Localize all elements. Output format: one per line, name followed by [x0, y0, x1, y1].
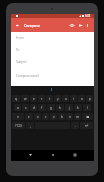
button[interactable]: t [46, 95, 53, 102]
staticText: g [50, 106, 52, 110]
button[interactable]: q [12, 95, 20, 102]
button[interactable]: y [54, 95, 61, 102]
button[interactable]: n [66, 113, 73, 120]
staticText: k [77, 106, 79, 110]
staticText: I [51, 88, 53, 92]
button[interactable]: k [74, 104, 82, 111]
staticText: c [45, 115, 47, 119]
button[interactable]: z [25, 113, 33, 120]
button[interactable]: w [21, 95, 29, 102]
button[interactable]: f [38, 104, 46, 111]
staticText: r [41, 97, 43, 101]
button[interactable] [12, 113, 24, 120]
button[interactable]: x [34, 113, 41, 120]
button[interactable]: Back [27, 152, 33, 158]
staticText: 6:03 [85, 14, 91, 18]
staticText: m [76, 115, 79, 119]
button[interactable]: , [26, 122, 34, 129]
staticText: i [73, 97, 74, 101]
button[interactable]: e [30, 95, 37, 102]
button[interactable]: u [62, 95, 69, 102]
button[interactable]: Compose email [11, 68, 94, 86]
button[interactable] [80, 122, 93, 129]
button[interactable]: g [47, 104, 55, 111]
button[interactable]: v [50, 113, 57, 120]
staticText: p [89, 97, 91, 101]
staticText: w [24, 97, 27, 101]
button[interactable]: o [78, 95, 85, 102]
button[interactable]: p [86, 95, 93, 102]
staticText: . [75, 124, 76, 128]
button[interactable]: Recent apps [72, 152, 78, 158]
staticText: o [81, 97, 83, 101]
staticText: j [69, 106, 70, 110]
button[interactable]: a [14, 104, 21, 111]
staticText: Compose [24, 23, 41, 28]
staticText: Compose email [16, 74, 39, 78]
button[interactable]: s [22, 104, 29, 111]
button[interactable]: m [74, 113, 81, 120]
staticText: t [49, 97, 51, 101]
button[interactable]: Home [50, 152, 56, 158]
staticText: x [37, 115, 39, 119]
staticText: e [33, 97, 35, 101]
button[interactable]: h [56, 104, 64, 111]
button[interactable]: d [30, 104, 37, 111]
staticText: ?123 [15, 124, 22, 128]
staticText: d [33, 106, 35, 110]
staticText: y [57, 97, 59, 101]
button[interactable]: . [71, 122, 79, 129]
button[interactable]: To [11, 44, 94, 56]
staticText: n [69, 115, 71, 119]
button[interactable]: Back [14, 22, 21, 29]
button[interactable]: j [65, 104, 73, 111]
staticText: To [16, 48, 20, 52]
button[interactable]: c [42, 113, 49, 120]
button[interactable]: ?123 [12, 122, 25, 129]
button[interactable]: I [38, 86, 66, 94]
staticText: u [65, 97, 67, 101]
staticText: From [16, 36, 24, 40]
button[interactable]: Attach file [68, 22, 75, 29]
button[interactable] [82, 113, 93, 120]
staticText: h [59, 106, 61, 110]
staticText: Subject [16, 60, 27, 64]
button[interactable]: Send [77, 22, 84, 29]
staticText: s [25, 106, 27, 110]
staticText: f [41, 106, 43, 110]
staticText: z [28, 115, 30, 119]
button[interactable]: Subject [11, 56, 94, 68]
staticText: a [17, 106, 19, 110]
button[interactable]: l [83, 104, 91, 111]
staticText: v [53, 115, 55, 119]
staticText: q [15, 97, 17, 101]
button[interactable]: i [70, 95, 77, 102]
button[interactable]: b [58, 113, 65, 120]
button[interactable]: r [38, 95, 45, 102]
button[interactable]: More options [85, 23, 90, 28]
staticText: b [61, 115, 63, 119]
staticText: l [87, 106, 88, 110]
staticText: , [30, 124, 31, 128]
button[interactable]: From [11, 32, 94, 44]
